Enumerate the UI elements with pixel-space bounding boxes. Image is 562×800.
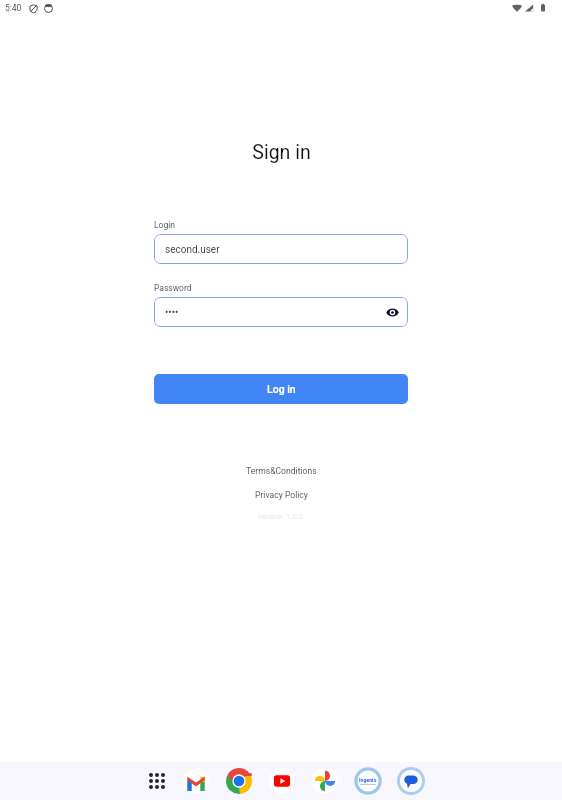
staticText: version: 1.0.0 (258, 512, 304, 521)
staticText: •••• (165, 307, 179, 319)
button[interactable]: YouTube (260, 762, 303, 800)
button[interactable]: Photos (303, 762, 346, 800)
staticText: second.user (165, 244, 220, 256)
staticText: Password (154, 283, 192, 293)
button[interactable]: Ingenio (346, 762, 389, 800)
button[interactable]: Messages (389, 762, 432, 800)
staticText: Login (154, 220, 175, 230)
button[interactable]: Chrome (217, 762, 260, 800)
staticText: Privacy Policy (255, 490, 308, 500)
button[interactable]: Gmail (174, 762, 217, 800)
button[interactable]: second.user (154, 234, 408, 264)
staticText: Log in (267, 383, 296, 395)
staticText: Terms&Conditions (246, 466, 317, 476)
staticText: 5:40 (5, 3, 22, 13)
button[interactable]: Privacy Policy (247, 488, 316, 502)
button[interactable]: Show password (384, 304, 400, 320)
staticText: Sign in (252, 141, 311, 164)
button[interactable]: •••• (154, 297, 408, 327)
button[interactable]: All apps (131, 762, 174, 800)
staticText: Ingenio (359, 777, 377, 783)
button[interactable]: Terms&Conditions (238, 464, 325, 478)
button[interactable]: Log in (154, 374, 408, 404)
